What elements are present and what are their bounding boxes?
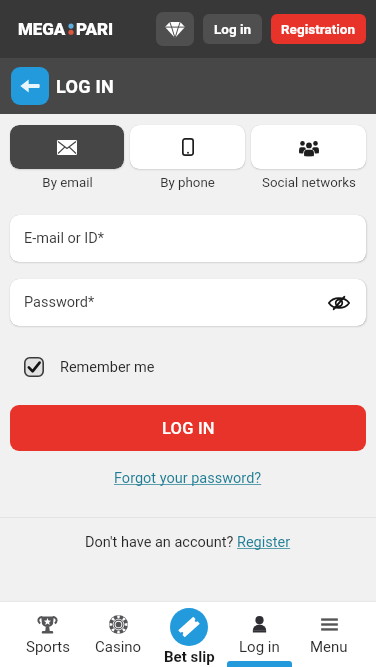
staticText: Sports <box>26 638 70 656</box>
staticText: Social networks <box>262 175 356 191</box>
staticText: Log in <box>239 638 280 656</box>
button[interactable]: By phone <box>130 125 245 191</box>
button[interactable]: MEGA <box>18 19 114 39</box>
staticText: Don't have an account? <box>85 534 237 551</box>
button[interactable]: E-mail or ID* <box>10 215 366 262</box>
button[interactable]: Casino <box>83 602 154 667</box>
staticText: Registration <box>281 21 356 37</box>
staticText: Remember me <box>60 359 155 376</box>
staticText: PARI <box>76 19 114 39</box>
staticText: Menu <box>310 638 348 656</box>
button[interactable]: Bet slip <box>154 602 224 667</box>
button[interactable]: Password* <box>10 279 366 326</box>
button[interactable]: Log in <box>224 602 294 667</box>
button[interactable]: Forgot your password? <box>114 470 262 487</box>
staticText: LOG IN <box>162 419 215 438</box>
staticText: By phone <box>160 175 215 191</box>
staticText: Log in <box>214 21 252 37</box>
button[interactable]: Menu <box>294 602 364 667</box>
button[interactable]: Show password <box>328 292 350 314</box>
staticText: LOG IN <box>56 76 115 97</box>
button[interactable]: Bonuses <box>156 12 194 46</box>
button[interactable]: Remember me <box>24 357 155 377</box>
button[interactable]: LOG IN <box>10 405 366 451</box>
staticText: E-mail or ID* <box>24 230 104 247</box>
staticText: Forgot your password? <box>114 470 262 487</box>
staticText: Bet slip <box>164 648 215 666</box>
staticText: Casino <box>95 638 142 656</box>
staticText: By email <box>42 175 93 191</box>
button[interactable]: Sports <box>12 602 83 667</box>
button[interactable]: Register <box>237 534 291 551</box>
button[interactable]: Back <box>11 67 49 105</box>
button[interactable]: Log in <box>203 14 262 44</box>
button[interactable]: Registration <box>271 14 366 44</box>
staticText: MEGA <box>18 19 66 39</box>
staticText: Register <box>237 534 291 551</box>
button[interactable]: Social networks <box>251 125 366 191</box>
button[interactable]: By email <box>10 125 124 191</box>
staticText: Password* <box>24 294 95 311</box>
